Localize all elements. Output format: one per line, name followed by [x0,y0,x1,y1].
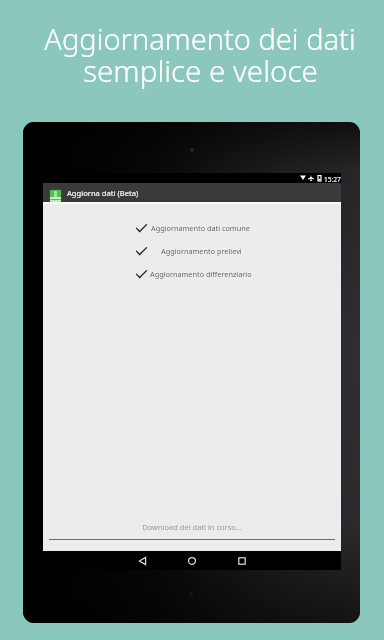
button[interactable]: Back [117,551,167,570]
staticText: Aggiornamento dati comune [151,223,250,233]
staticText: Aggiorna dati (Beta) [67,188,139,198]
staticText: 15:27 [324,175,341,184]
staticText: semplice e veloce [83,50,318,90]
button[interactable]: Recents [217,551,267,570]
staticText: Download dei dati in corso... [43,522,341,532]
button[interactable]: Aggiornamento prelievi [43,246,341,256]
staticText: Aggiornamento differenziario [150,269,252,279]
button[interactable]: Home [167,551,217,570]
button[interactable]: Aggiorna dati (Beta) [43,183,341,202]
staticText: Aggiornamento prelievi [161,246,242,256]
button[interactable]: Aggiornamento dati comune [43,223,341,233]
button[interactable]: Aggiornamento differenziario [43,269,341,279]
staticText: Aggiornamento dei dati [44,19,356,58]
